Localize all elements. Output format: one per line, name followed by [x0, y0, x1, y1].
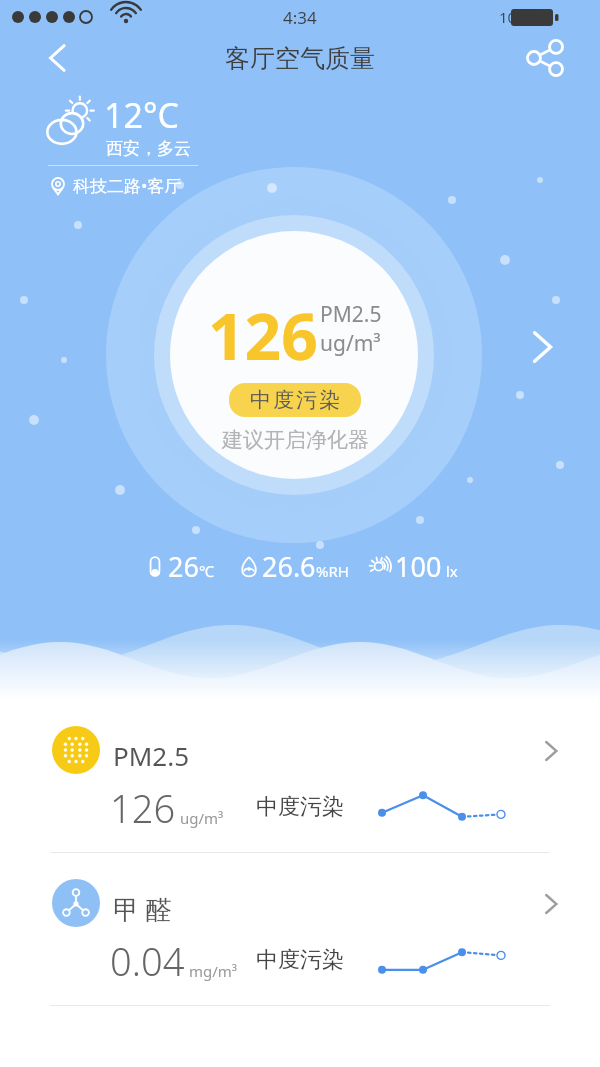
staticText: 100% — [499, 7, 538, 27]
staticText: 26.6 — [262, 548, 316, 585]
staticText: 0.04 — [110, 935, 185, 987]
staticText: 西安，多云 — [106, 138, 191, 159]
staticText: mg/m³ — [189, 961, 238, 981]
button[interactable]: 中度污染 — [229, 383, 361, 417]
button[interactable]: Back — [36, 36, 80, 80]
staticText: 12°C — [104, 92, 179, 138]
button[interactable]: 甲 醛 — [0, 853, 600, 1005]
staticText: 建议开启净化器 — [222, 427, 369, 453]
button[interactable]: Next — [522, 326, 564, 368]
staticText: 126 — [208, 292, 318, 379]
staticText: 甲 醛 — [113, 891, 172, 927]
button[interactable]: Share — [522, 35, 568, 81]
staticText: 126 — [110, 782, 176, 834]
staticText: 中度污染 — [256, 793, 344, 821]
staticText: 中度污染 — [256, 946, 344, 974]
staticText: 4:34 — [283, 6, 317, 29]
staticText: %RH — [316, 561, 349, 581]
staticText: 中度污染 — [249, 387, 341, 413]
staticText: ℃ — [199, 561, 214, 581]
other: Open 甲 醛 details — [536, 889, 566, 919]
staticText: PM2.5 — [320, 300, 382, 329]
staticText: lx — [442, 561, 458, 581]
staticText: ug/m³ — [180, 808, 224, 828]
staticText: PM2.5 — [113, 738, 190, 773]
staticText: 100 — [395, 548, 442, 585]
button[interactable]: PM2.5 — [0, 700, 600, 852]
staticText: ug/m³ — [320, 329, 381, 358]
other: Open PM2.5 details — [536, 736, 566, 766]
staticText: 26 — [168, 548, 199, 585]
staticText: 客厅空气质量 — [225, 43, 375, 74]
staticText: 科技二路•客厅 — [73, 174, 182, 197]
